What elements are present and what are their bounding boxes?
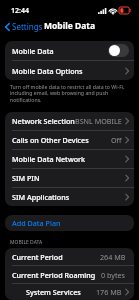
button[interactable]: Network Selection <box>5 112 134 130</box>
staticText: Mobile Data Options <box>12 66 83 76</box>
staticText: SIM PIN <box>12 173 40 183</box>
staticText: Current Period Roaming <box>12 270 96 280</box>
staticText: Calls on Other Devices <box>12 135 89 145</box>
button[interactable]: Switch off <box>108 44 129 57</box>
staticText: Off <box>111 135 122 145</box>
button[interactable]: SIM PIN <box>5 169 134 187</box>
staticText: Network Selection <box>12 116 75 126</box>
button[interactable]: SIM Applications <box>5 188 134 206</box>
button[interactable]: Mobile Data Options <box>5 61 134 80</box>
button[interactable]: System Services <box>5 284 134 300</box>
button[interactable]: Add Data Plan <box>5 215 134 231</box>
staticText: Current Period <box>12 252 63 262</box>
button[interactable]: Current Period Roaming <box>5 266 134 283</box>
button[interactable]: Settings <box>5 21 43 32</box>
staticText: Add Data Plan <box>12 218 61 228</box>
button[interactable]: Mobile Data Network <box>5 150 134 168</box>
button[interactable]: Current Period <box>5 248 134 265</box>
staticText: Mobile Data <box>44 20 96 32</box>
staticText: SIM Applications <box>12 192 70 202</box>
staticText: BSNL MOBILE <box>75 116 122 126</box>
staticText: 0 bytes <box>101 270 126 280</box>
staticText: MOBILE DATA <box>10 239 43 246</box>
staticText: System Services <box>26 287 81 297</box>
staticText: Settings <box>12 21 43 32</box>
staticText: Turn off mobile data to restrict all dat… <box>10 83 129 104</box>
button[interactable]: Mobile Data <box>5 41 134 60</box>
staticText: Mobile Data <box>12 46 54 56</box>
staticText: 176 MB <box>96 287 122 297</box>
button[interactable]: Calls on Other Devices <box>5 131 134 149</box>
staticText: 264 MB <box>100 252 126 262</box>
staticText: 12:44 <box>11 6 29 16</box>
staticText: Mobile Data Network <box>12 154 86 164</box>
